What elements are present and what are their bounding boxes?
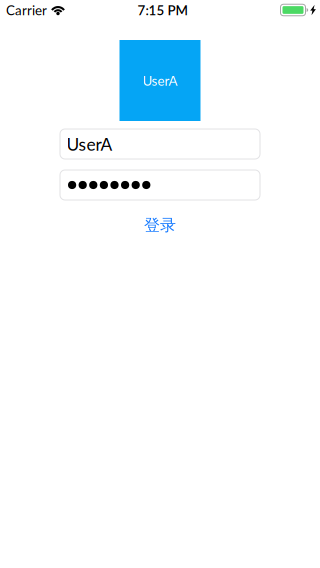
- staticText: UserA: [142, 72, 177, 88]
- staticText: 7:15 PM: [137, 2, 187, 18]
- staticText: UserA: [66, 134, 112, 154]
- button[interactable]: 登录: [144, 215, 176, 235]
- button[interactable]: User avatar: [119, 40, 200, 121]
- staticText: 登录: [144, 215, 176, 235]
- button[interactable]: UserA: [60, 129, 260, 159]
- button[interactable]: Password: [60, 170, 260, 200]
- staticText: Carrier: [6, 2, 47, 18]
